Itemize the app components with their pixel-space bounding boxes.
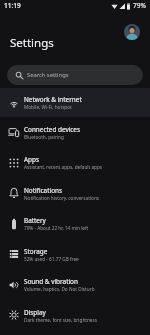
- staticText: 79%: [133, 1, 146, 10]
- staticText: Volume, haptics, Do Not Disturb: [24, 286, 95, 292]
- staticText: Display: [24, 308, 46, 317]
- staticText: Assistant, recent apps, default apps: [24, 164, 103, 170]
- staticText: Mobile, Wi-Fi, hotspot: [24, 104, 72, 110]
- button[interactable]: Network & internet: [0, 88, 150, 117]
- staticText: Battery: [24, 216, 46, 225]
- staticText: Connected devices: [24, 125, 81, 134]
- button[interactable]: [124, 24, 140, 40]
- button[interactable]: Display: [0, 300, 150, 330]
- staticText: Search settings: [27, 71, 69, 79]
- button[interactable]: Storage: [0, 239, 150, 269]
- staticText: Dark theme, font size, brightness: [24, 317, 98, 323]
- staticText: Network & internet: [24, 95, 82, 104]
- button[interactable]: Notifications: [0, 178, 150, 208]
- staticText: Sound & vibration: [24, 277, 78, 286]
- staticText: 79% - About 22 hr, 14 min left: [24, 225, 89, 231]
- button[interactable]: Sound & vibration: [0, 269, 150, 300]
- button[interactable]: Search settings: [7, 65, 143, 85]
- staticText: Settings: [10, 35, 54, 51]
- staticText: 11:19: [4, 1, 21, 10]
- staticText: Storage: [24, 247, 48, 256]
- button[interactable]: Connected devices: [0, 117, 150, 147]
- staticText: 52% used - 61.77 GB free: [24, 256, 79, 262]
- button[interactable]: Apps: [0, 147, 150, 178]
- staticText: Apps: [24, 155, 40, 164]
- button[interactable]: Battery: [0, 208, 150, 239]
- staticText: Notification history, conversations: [24, 195, 100, 201]
- staticText: Notifications: [24, 186, 63, 195]
- staticText: Bluetooth, pairing: [24, 134, 64, 140]
